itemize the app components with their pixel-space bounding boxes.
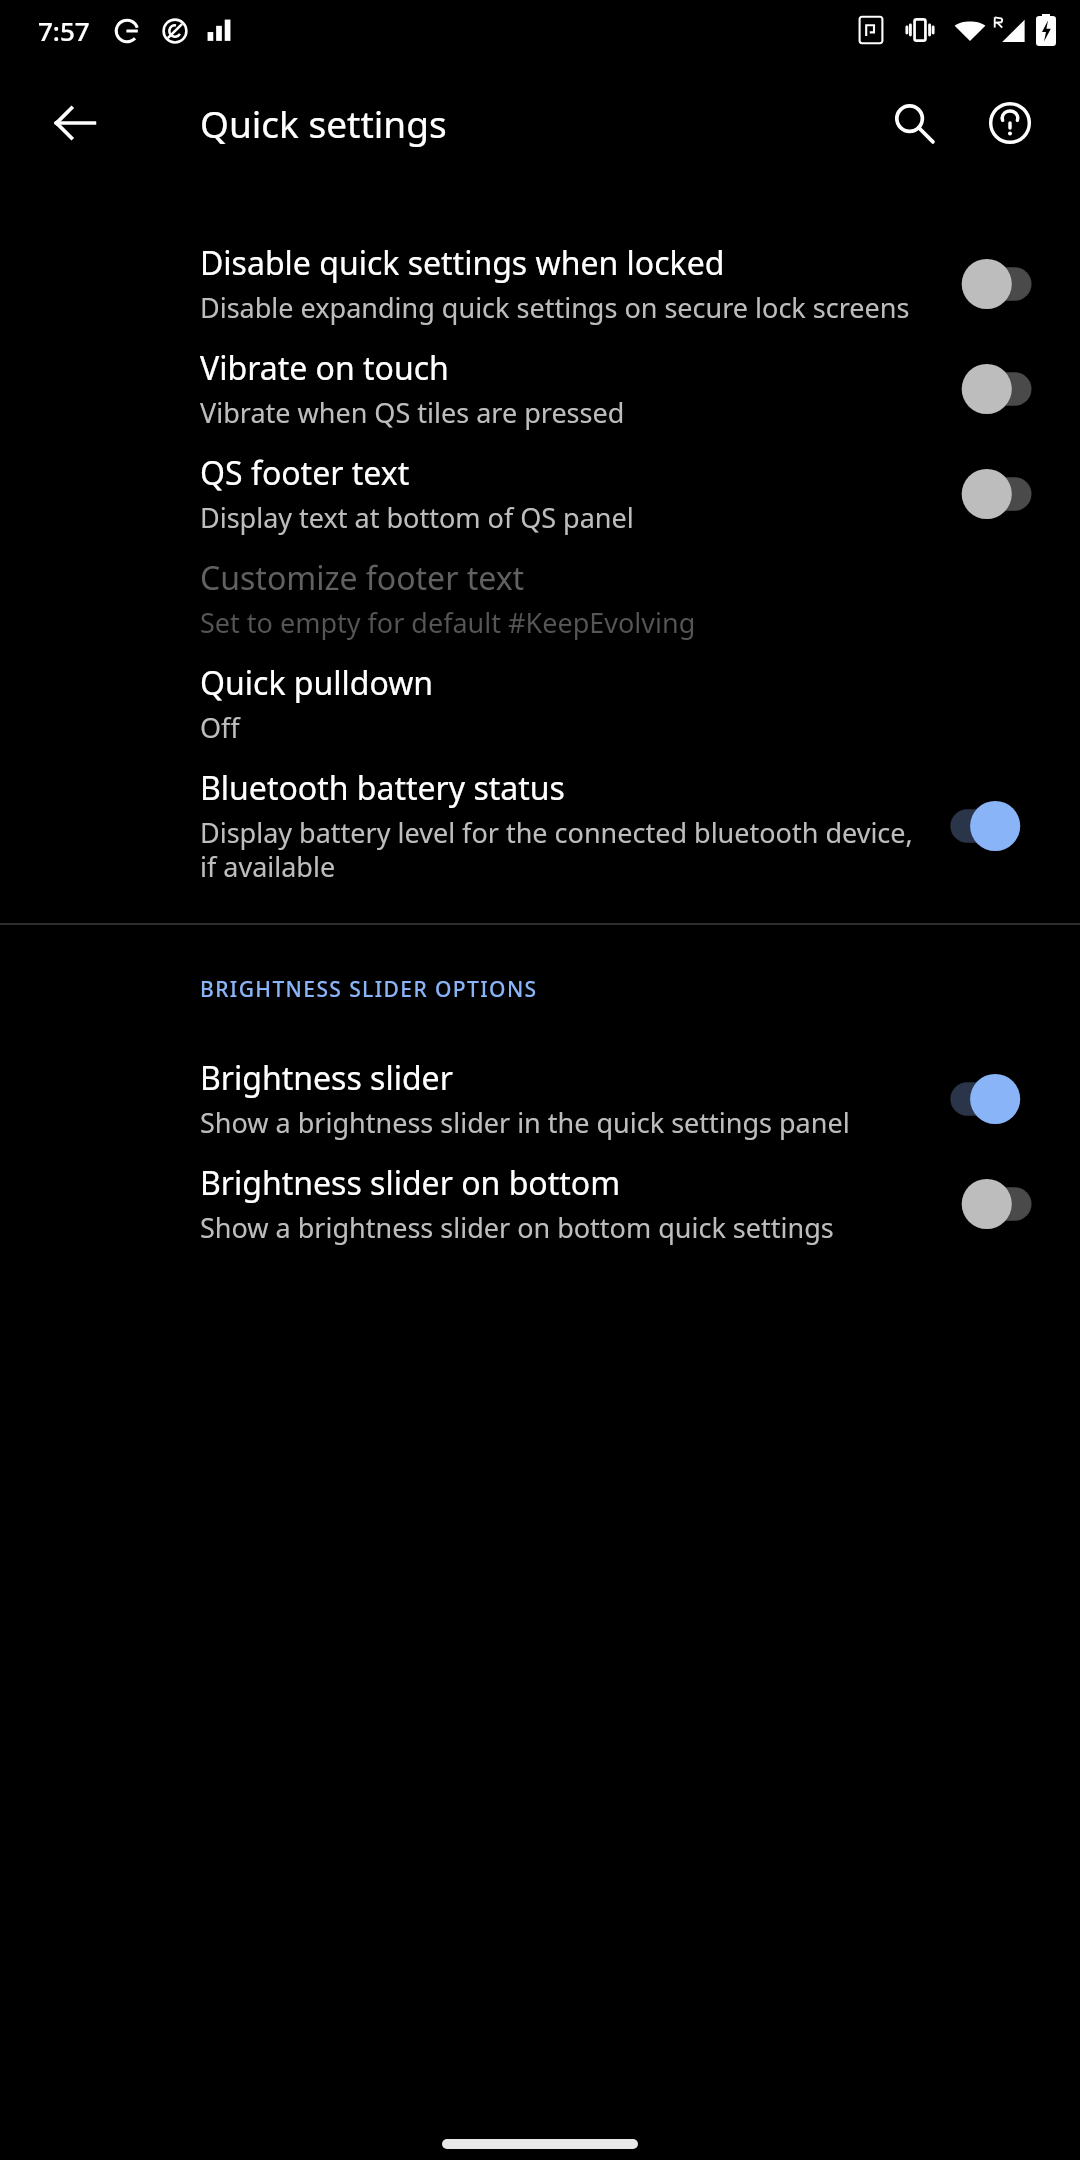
staticText: 7:57 [38,13,90,48]
staticText: Bluetooth battery status [200,766,565,810]
button[interactable]: Back [30,78,120,168]
staticText: Show a brightness slider in the quick se… [200,1104,850,1141]
button[interactable]: Disable quick settings when locked [0,231,1080,336]
staticText: Quick pulldown [200,661,434,705]
button[interactable]: Brightness slider [0,1046,1080,1151]
button[interactable]: Quick pulldown [0,651,1080,756]
button[interactable]: Customize footer text [0,546,1080,651]
staticText: BRIGHTNESS SLIDER OPTIONS [200,975,538,1004]
staticText: Quick settings [200,98,447,148]
staticText: Disable expanding quick settings on secu… [200,289,910,326]
staticText: Show a brightness slider on bottom quick… [200,1209,834,1246]
staticText: Set to empty for default #KeepEvolving [200,604,696,641]
staticText: Display battery level for the connected … [200,814,914,885]
staticText: Brightness slider on bottom [200,1161,621,1205]
staticText: Customize footer text [200,556,525,600]
button[interactable]: Search [866,75,962,171]
staticText: Off [200,709,240,746]
button[interactable]: QS footer text [0,441,1080,546]
staticText: Disable quick settings when locked [200,241,725,285]
staticText: QS footer text [200,451,410,495]
button[interactable]: Vibrate on touch [0,336,1080,441]
button[interactable]: Brightness slider on bottom [0,1151,1080,1256]
staticText: Vibrate when QS tiles are pressed [200,394,625,431]
staticText: Brightness slider [200,1056,453,1100]
button[interactable]: Help [962,75,1058,171]
staticText: Display text at bottom of QS panel [200,499,634,536]
button[interactable]: Bluetooth battery status [0,756,1080,895]
staticText: Vibrate on touch [200,346,449,390]
